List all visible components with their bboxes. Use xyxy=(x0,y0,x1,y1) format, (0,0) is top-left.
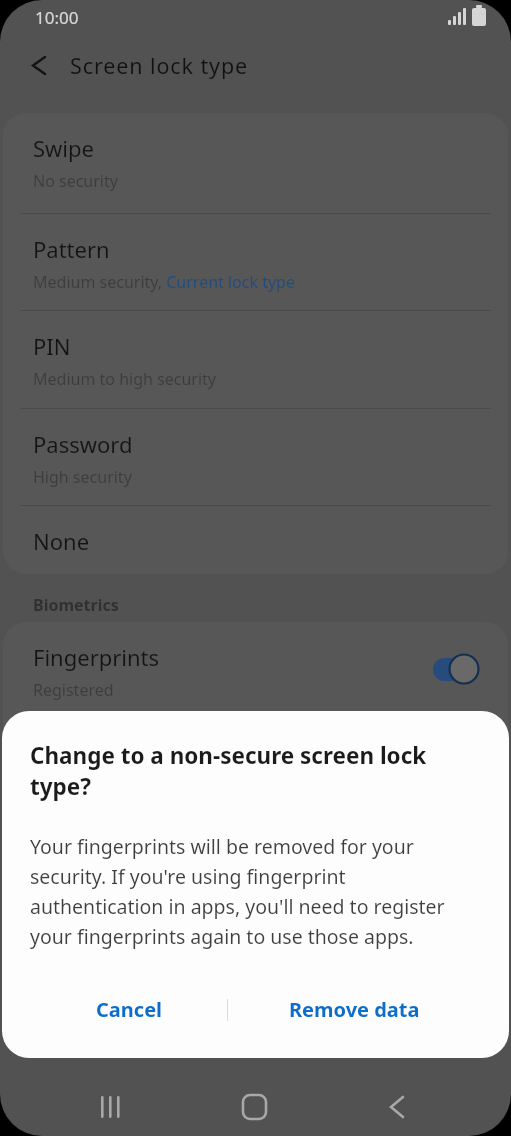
staticText: Your fingerprints will be removed for yo… xyxy=(30,833,445,949)
staticText: Pattern xyxy=(33,234,110,264)
staticText: Password xyxy=(33,429,133,459)
button[interactable] xyxy=(171,1080,341,1136)
button[interactable]: Fingerprints xyxy=(3,622,508,722)
button[interactable] xyxy=(341,1080,511,1136)
staticText: Cancel xyxy=(96,996,163,1023)
button[interactable]: Password xyxy=(3,409,508,505)
staticText: Medium security, Current lock type xyxy=(33,271,295,293)
staticText: 10:00 xyxy=(35,6,79,29)
button[interactable]: Remove data xyxy=(287,986,421,1032)
staticText: Screen lock type xyxy=(70,51,249,80)
staticText: PIN xyxy=(33,331,71,361)
staticText: Registered xyxy=(33,679,114,701)
staticText: Remove data xyxy=(289,996,420,1023)
staticText: Change to a non-secure screen lock type? xyxy=(30,740,427,802)
button[interactable]: None xyxy=(3,506,508,574)
staticText: None xyxy=(33,526,90,556)
staticText: Medium to high security xyxy=(33,368,216,390)
staticText: No security xyxy=(33,170,118,192)
button[interactable]: Pattern xyxy=(3,214,508,310)
button[interactable] xyxy=(18,48,62,84)
staticText: Biometrics xyxy=(33,594,119,616)
button[interactable]: PIN xyxy=(3,311,508,408)
button[interactable] xyxy=(0,1080,171,1136)
button[interactable]: Cancel xyxy=(62,986,196,1032)
button[interactable]: Swipe xyxy=(3,113,508,213)
staticText: High security xyxy=(33,466,132,488)
staticText: Fingerprints xyxy=(33,642,160,672)
staticText: Swipe xyxy=(33,133,94,163)
